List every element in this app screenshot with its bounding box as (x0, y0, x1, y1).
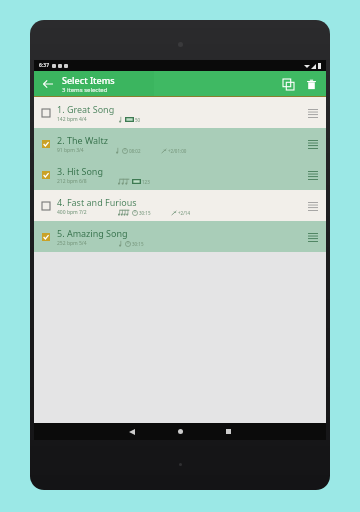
staticText: 4. Fast and Furious (57, 196, 137, 208)
button[interactable]: Deselect item (38, 229, 54, 245)
staticText: 6:37 (39, 62, 49, 69)
button[interactable]: Deselect item (34, 221, 326, 252)
staticText: 30:15 (132, 241, 144, 247)
staticText: 123 (142, 179, 150, 185)
staticText: 08:02 (129, 148, 141, 154)
staticText: +2/01:00 (168, 148, 187, 154)
button[interactable]: Select item (38, 105, 54, 121)
staticText: 142 bpm 4/4 (57, 116, 87, 123)
staticText: +2/14 (178, 210, 190, 216)
staticText: 30:15 (139, 210, 151, 216)
button[interactable]: Deselect item (34, 128, 326, 159)
staticText: 400 bpm 7/2 (57, 209, 87, 216)
button[interactable]: Delete (301, 74, 321, 94)
button[interactable]: Reorder (304, 166, 322, 184)
button[interactable]: Deselect item (38, 136, 54, 152)
staticText: 50 (135, 117, 141, 123)
staticText: 91 bpm 3/4 (57, 147, 84, 154)
staticText: 252 bpm 5/4 (57, 240, 87, 247)
button[interactable]: Reorder (304, 197, 322, 215)
button[interactable]: Deselect item (38, 167, 54, 183)
button[interactable]: Reorder (304, 228, 322, 246)
staticText: Select Items (62, 74, 115, 86)
button[interactable]: Back (122, 423, 142, 440)
button[interactable]: Select item (34, 97, 326, 128)
button[interactable]: Recents (218, 423, 238, 440)
button[interactable]: Copy (278, 74, 298, 94)
button[interactable]: Back (39, 75, 57, 93)
staticText: 5. Amazing Song (57, 227, 128, 239)
button[interactable]: Select item (34, 190, 326, 221)
staticText: 3 items selected (62, 86, 108, 94)
staticText: 212 bpm 6/8 (57, 178, 87, 185)
button[interactable]: Reorder (304, 104, 322, 122)
button[interactable]: Select item (38, 198, 54, 214)
button[interactable]: Reorder (304, 135, 322, 153)
staticText: 3. Hit Song (57, 165, 103, 177)
button[interactable]: Home (170, 423, 190, 440)
button[interactable]: Deselect item (34, 159, 326, 190)
staticText: 1. Great Song (57, 103, 115, 115)
staticText: 2. The Waltz (57, 134, 108, 146)
